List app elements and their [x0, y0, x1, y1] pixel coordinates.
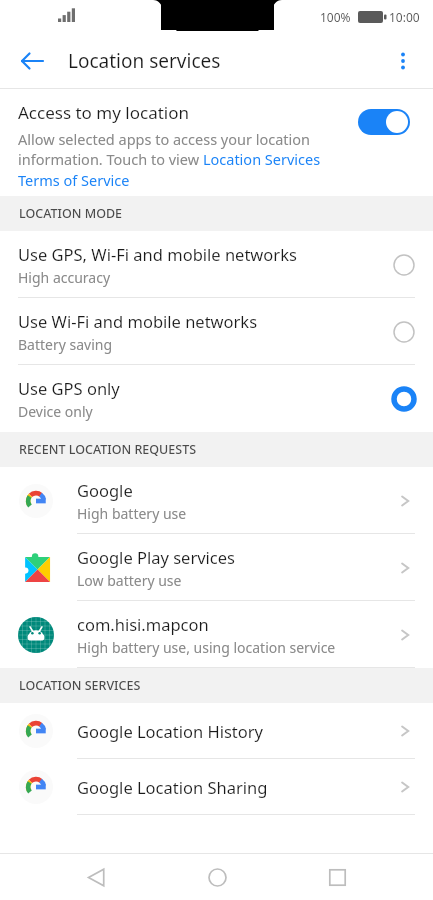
button[interactable]: Google: [0, 467, 433, 534]
button[interactable]: Google Location Sharing: [0, 759, 433, 815]
staticText: com.hisi.mapcon: [77, 613, 209, 635]
staticText: Use Wi-Fi and mobile networks: [18, 310, 258, 332]
button[interactable]: Home: [193, 854, 241, 900]
button[interactable]: Back: [72, 854, 120, 900]
staticText: Device only: [18, 402, 93, 421]
button[interactable]: Back: [10, 39, 54, 83]
staticText: Google Location History: [77, 720, 264, 742]
button[interactable]: com.hisi.mapcon: [0, 601, 433, 668]
staticText: Use GPS, Wi-Fi and mobile networks: [18, 243, 297, 265]
staticText: 100%: [320, 9, 351, 25]
staticText: Use GPS only: [18, 377, 120, 399]
staticText: Google Location Sharing: [77, 776, 268, 798]
staticText: LOCATION MODE: [19, 205, 123, 222]
button[interactable]: Use GPS, Wi-Fi and mobile networks: [0, 231, 433, 298]
staticText: RECENT LOCATION REQUESTS: [19, 441, 197, 458]
button[interactable]: Use Wi-Fi and mobile networks: [0, 298, 433, 365]
button[interactable]: [358, 109, 410, 135]
staticText: LOCATION SERVICES: [19, 677, 141, 694]
staticText: Battery saving: [18, 335, 113, 354]
staticText: Google Play services: [77, 546, 235, 568]
button[interactable]: More options: [381, 39, 425, 83]
button[interactable]: Access to my location: [0, 89, 433, 196]
staticText: Google: [77, 479, 133, 501]
staticText: Access to my location: [18, 101, 189, 124]
button[interactable]: Recents: [313, 854, 361, 900]
button[interactable]: Use GPS only: [0, 365, 433, 432]
staticText: Low battery use: [77, 571, 182, 590]
button[interactable]: Google Location History: [0, 703, 433, 759]
staticText: Location services: [68, 48, 221, 74]
staticText: High accuracy: [18, 268, 111, 287]
staticText: Allow selected apps to access your locat…: [18, 129, 323, 191]
staticText: High battery use, using location service: [77, 638, 336, 657]
button[interactable]: Google Play services: [0, 534, 433, 601]
staticText: High battery use: [77, 504, 187, 523]
staticText: 10:00: [389, 9, 420, 25]
